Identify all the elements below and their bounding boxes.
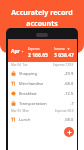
staticText: Transportation [19, 101, 47, 106]
button[interactable]: Add record [64, 127, 74, 137]
staticText: 2 166.65 [28, 52, 48, 59]
staticText: Shopping [19, 71, 37, 76]
staticText: Mar 04 Tue [11, 63, 28, 67]
button[interactable]: Lunch [8, 114, 77, 124]
staticText: -68.0 [64, 81, 74, 86]
staticText: Expense [28, 47, 40, 51]
staticText: -12.5 [64, 91, 74, 96]
staticText: -7 [70, 101, 74, 106]
button[interactable]: Apr [11, 47, 24, 55]
staticText: Merchandise [19, 81, 44, 86]
button[interactable]: Transportation [8, 98, 77, 108]
staticText: Accurately record [11, 8, 73, 18]
button[interactable]: Toggle amount visibility [67, 48, 70, 51]
button[interactable]: Breakfast [8, 88, 77, 98]
button[interactable]: Merchandise [8, 78, 77, 88]
staticText: Expense 129.9 [53, 63, 74, 67]
staticText: Apr [11, 48, 20, 55]
staticText: -29.9 [64, 71, 74, 76]
staticText: -58.0 [64, 117, 74, 122]
staticText: 3 038.47 [54, 52, 74, 59]
button[interactable]: Shopping [8, 68, 77, 78]
staticText: Lunch [19, 117, 31, 122]
staticText: accounts [26, 19, 58, 29]
staticText: Mar 03 Mon [11, 109, 29, 113]
staticText: Expense 58.0 [55, 109, 74, 113]
staticText: Income [54, 47, 65, 51]
staticText: Breakfast [19, 91, 37, 96]
